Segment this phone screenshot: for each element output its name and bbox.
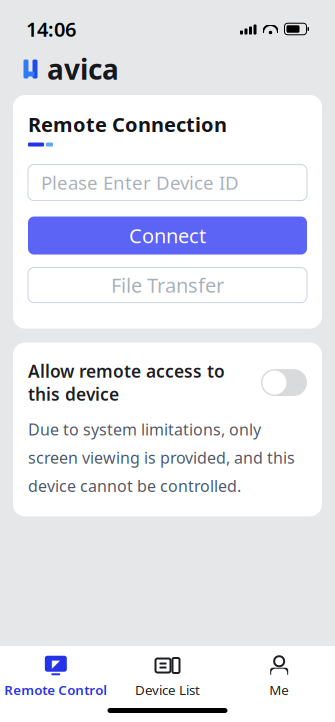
staticText: ◤: [52, 658, 60, 670]
staticText: File Transfer: [111, 272, 224, 298]
button[interactable]: Device List: [112, 655, 223, 699]
button[interactable]: Connect: [28, 217, 307, 255]
staticText: Remote Control: [4, 681, 107, 699]
button[interactable]: ◤: [0, 655, 112, 699]
staticText: Me: [269, 681, 289, 699]
staticText: Remote Connection: [28, 111, 227, 138]
staticText: Connect: [129, 222, 206, 249]
staticText: Device List: [135, 681, 200, 699]
button[interactable]: Me: [223, 655, 335, 699]
staticText: avica: [47, 50, 119, 88]
staticText: Allow remote access to this device: [28, 360, 225, 406]
staticText: Please Enter Device ID: [41, 170, 239, 195]
button[interactable]: Please Enter Device ID: [28, 165, 307, 201]
button[interactable]: File Transfer: [28, 268, 307, 303]
staticText: 14:06: [26, 16, 76, 42]
staticText: Due to system limitations, only screen v…: [28, 419, 295, 496]
button[interactable]: Allow remote access to this device: [261, 369, 307, 396]
